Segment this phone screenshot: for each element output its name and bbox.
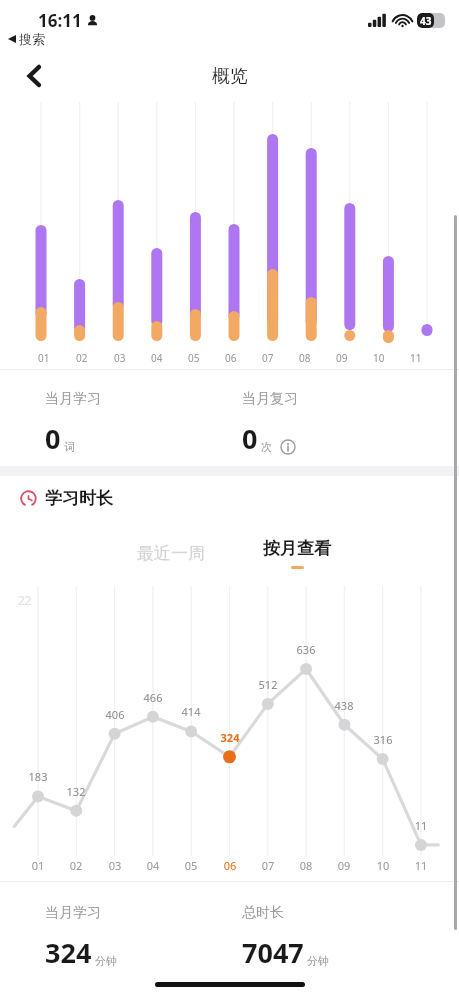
button[interactable]: Back (18, 59, 52, 93)
staticText: 03 (114, 351, 126, 365)
button[interactable]: 最近一周 (117, 535, 225, 572)
staticText: 05 (173, 858, 209, 873)
staticText: 06 (225, 351, 237, 365)
staticText: 最近一周 (137, 543, 205, 564)
staticText: 466 (135, 690, 171, 705)
staticText: 02 (76, 351, 88, 365)
staticText: 05 (188, 351, 200, 365)
staticText: 09 (326, 858, 362, 873)
staticText: 316 (365, 732, 401, 747)
staticText: 636 (288, 642, 324, 657)
staticText: 07 (250, 858, 286, 873)
staticText: 11 (403, 858, 439, 873)
staticText: 概览 (212, 65, 248, 88)
staticText: 0 (242, 420, 258, 457)
staticText: 按月查看 (263, 538, 331, 559)
staticText: 0 (45, 420, 61, 457)
staticText: 16:11 (38, 9, 82, 32)
staticText: 当月复习 (242, 390, 298, 408)
staticText: 324 (45, 934, 92, 971)
staticText: 414 (173, 704, 209, 719)
staticText: 词 (64, 440, 75, 454)
staticText: 132 (58, 784, 94, 799)
staticText: 512 (250, 677, 286, 692)
staticText: 分钟 (307, 954, 329, 968)
staticText: 406 (97, 707, 133, 722)
staticText: 02 (58, 858, 94, 873)
staticText: 22 (18, 592, 32, 608)
staticText: 01 (38, 351, 50, 365)
staticText: 10 (373, 351, 385, 365)
button[interactable]: 按月查看 (251, 534, 343, 573)
staticText: 11 (410, 351, 422, 365)
staticText: 分钟 (95, 954, 117, 968)
staticText: 03 (97, 858, 133, 873)
staticText: 04 (135, 858, 171, 873)
staticText: 324 (212, 730, 248, 745)
button[interactable]: Info (279, 438, 296, 455)
staticText: 04 (151, 351, 163, 365)
staticText: 当月学习 (45, 390, 101, 408)
staticText: 43 (420, 14, 432, 28)
staticText: 06 (212, 858, 248, 873)
staticText: 总时长 (242, 904, 284, 922)
staticText: 11 (403, 818, 439, 833)
staticText: 07 (262, 351, 274, 365)
staticText: 次 (261, 440, 272, 454)
staticText: 183 (20, 769, 56, 784)
staticText: 10 (365, 858, 401, 873)
staticText: 438 (326, 698, 362, 713)
staticText: 09 (336, 351, 348, 365)
staticText: 08 (299, 351, 311, 365)
staticText: 学习时长 (45, 488, 113, 509)
staticText: 7047 (242, 934, 304, 971)
staticText: 08 (288, 858, 324, 873)
staticText: 01 (20, 858, 56, 873)
staticText: 当月学习 (45, 904, 101, 922)
staticText: 搜索 (19, 31, 45, 47)
